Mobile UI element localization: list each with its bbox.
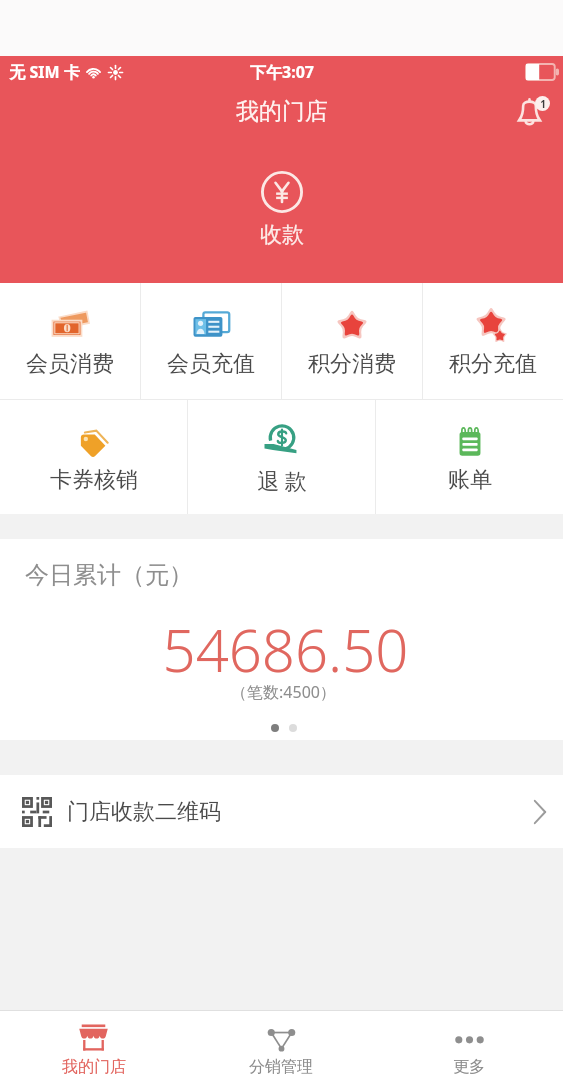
staticText: 更多	[453, 1057, 485, 1074]
staticText: 会员消费	[26, 350, 114, 378]
staticText: 退 款	[257, 465, 307, 495]
staticText: 卡券核销	[50, 466, 138, 494]
button[interactable]: 更多	[375, 1011, 563, 1074]
staticText: 积分消费	[308, 350, 396, 378]
staticText: 我的门店	[236, 97, 328, 126]
staticText: 今日累计（元）	[25, 560, 193, 590]
staticText: 我的门店	[62, 1057, 126, 1074]
staticText: 1	[540, 97, 546, 111]
button[interactable]: 分销管理	[187, 1011, 375, 1074]
button[interactable]: 账单	[376, 400, 563, 514]
staticText: 无 SIM 卡	[9, 61, 80, 83]
staticText: 账单	[448, 466, 492, 494]
button[interactable]: 会员充值	[141, 283, 281, 399]
button[interactable]: 门店收款二维码	[0, 775, 563, 848]
staticText: （笔数:4500）	[2, 681, 563, 703]
button[interactable]: 卡券核销	[0, 400, 187, 514]
staticText: 分销管理	[249, 1057, 313, 1074]
staticText: 积分充值	[449, 350, 537, 378]
staticText: 收款	[260, 221, 304, 249]
button[interactable]: 积分消费	[282, 283, 422, 399]
button[interactable]: 积分充值	[423, 283, 563, 399]
button[interactable]: 会员消费	[0, 283, 140, 399]
button[interactable]: Notifications	[510, 90, 554, 134]
staticText: 54686.50	[4, 610, 563, 689]
staticText: 下午3:07	[250, 61, 314, 83]
staticText: 会员充值	[167, 350, 255, 378]
button[interactable]: 退 款	[188, 400, 375, 514]
button[interactable]: 我的门店	[0, 1011, 187, 1074]
button[interactable]: 收款	[0, 171, 563, 249]
staticText: 门店收款二维码	[67, 798, 527, 826]
